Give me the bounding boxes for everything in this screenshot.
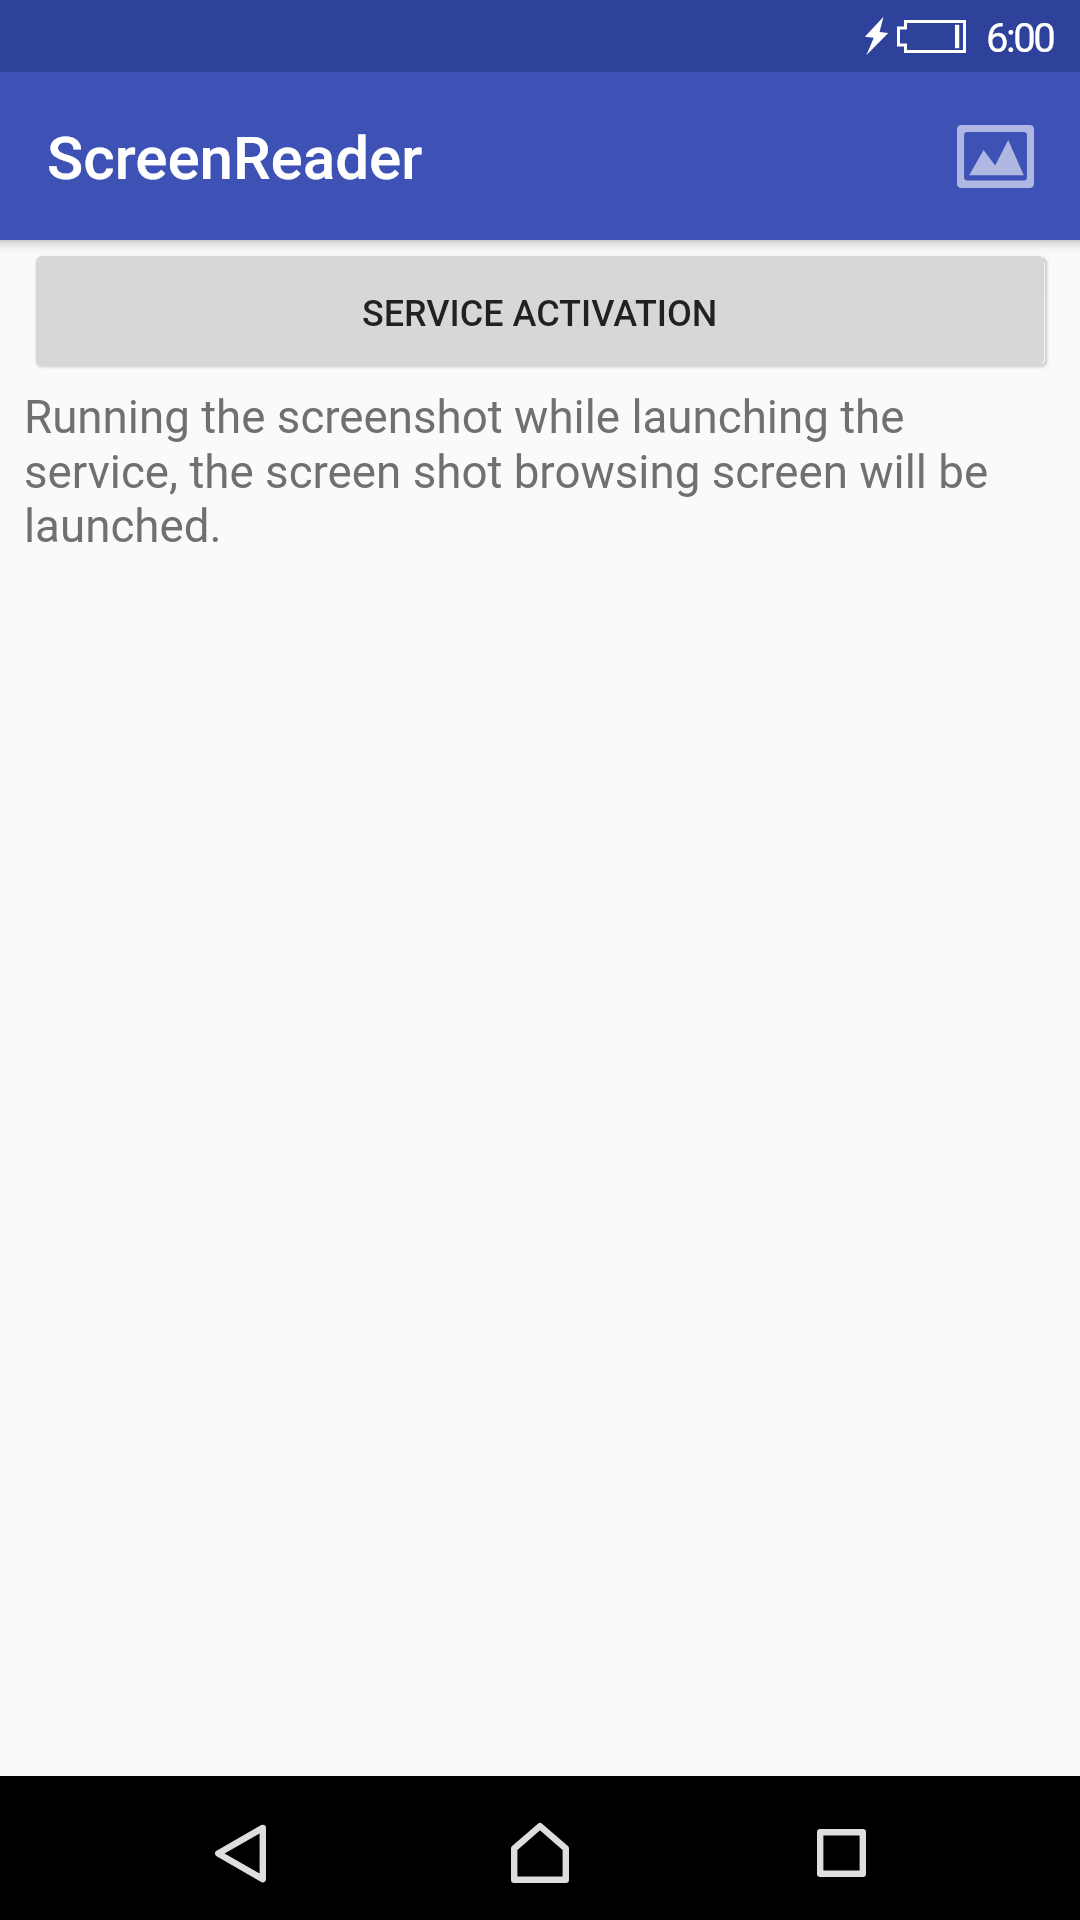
button[interactable]: Recent apps [781,1793,901,1913]
button[interactable]: Back [180,1793,300,1913]
staticText: Running the screenshot while launching t… [24,391,1056,553]
staticText: 6:00 [986,15,1054,62]
button[interactable]: Open screenshot gallery [923,84,1067,228]
staticText: SERVICE ACTIVATION [362,293,718,335]
button[interactable]: SERVICE ACTIVATION [36,256,1044,366]
button[interactable]: Home [480,1793,600,1913]
staticText: ScreenReader [47,123,423,193]
